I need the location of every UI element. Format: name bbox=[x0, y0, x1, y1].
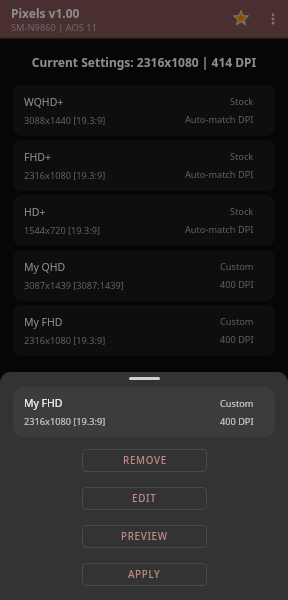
button[interactable]: APPLY bbox=[82, 563, 207, 586]
staticText: Stock bbox=[230, 205, 254, 218]
staticText: 400 DPI bbox=[220, 278, 254, 291]
button[interactable]: PREVIEW bbox=[82, 525, 207, 548]
staticText: APPLY bbox=[128, 568, 161, 581]
staticText: Current Settings: 2316x1080 | 414 DPI bbox=[0, 54, 288, 70]
button[interactable]: EDIT bbox=[82, 487, 207, 510]
staticText: 3088x1440 [19.3:9] bbox=[24, 114, 106, 127]
staticText: My FHD bbox=[24, 396, 63, 410]
staticText: 400 DPI bbox=[220, 333, 254, 346]
button[interactable]: WQHD+ bbox=[13, 85, 275, 136]
staticText: SM-N9860 | AOS 11 bbox=[11, 21, 97, 34]
staticText: 2316x1080 [19.3:9] bbox=[24, 169, 106, 182]
button[interactable]: FHD+ bbox=[13, 140, 275, 191]
staticText: Custom bbox=[220, 315, 254, 328]
staticText: Custom bbox=[220, 260, 254, 273]
staticText: My QHD bbox=[24, 260, 66, 274]
staticText: My FHD bbox=[24, 315, 63, 329]
button[interactable]: More options bbox=[258, 4, 288, 34]
staticText: Auto-match DPI bbox=[185, 113, 254, 126]
button[interactable]: My FHD bbox=[13, 387, 275, 437]
button[interactable]: Drag handle bbox=[120, 372, 168, 384]
staticText: FHD+ bbox=[24, 150, 51, 164]
button[interactable]: My QHD bbox=[13, 250, 275, 301]
button[interactable]: My FHD bbox=[13, 305, 275, 356]
staticText: Auto-match DPI bbox=[185, 223, 254, 236]
staticText: WQHD+ bbox=[24, 95, 64, 109]
staticText: Stock bbox=[230, 95, 254, 108]
staticText: PREVIEW bbox=[121, 530, 168, 543]
staticText: Pixels v1.00 bbox=[11, 5, 80, 21]
staticText: Custom bbox=[220, 397, 254, 410]
button[interactable]: HD+ bbox=[13, 195, 275, 246]
staticText: 2316x1080 [19.3:9] bbox=[24, 415, 106, 428]
staticText: REMOVE bbox=[123, 454, 167, 467]
staticText: EDIT bbox=[132, 492, 157, 505]
staticText: 2316x1080 [19.3:9] bbox=[24, 334, 106, 347]
staticText: 1544x720 [19.3:9] bbox=[24, 224, 101, 237]
staticText: Stock bbox=[230, 150, 254, 163]
button[interactable]: REMOVE bbox=[82, 449, 207, 472]
staticText: 400 DPI bbox=[220, 415, 254, 428]
button[interactable]: Favorite bbox=[226, 3, 256, 33]
staticText: HD+ bbox=[24, 205, 46, 219]
staticText: Auto-match DPI bbox=[185, 168, 254, 181]
staticText: 3087x1439 [3087:1439] bbox=[24, 279, 124, 292]
